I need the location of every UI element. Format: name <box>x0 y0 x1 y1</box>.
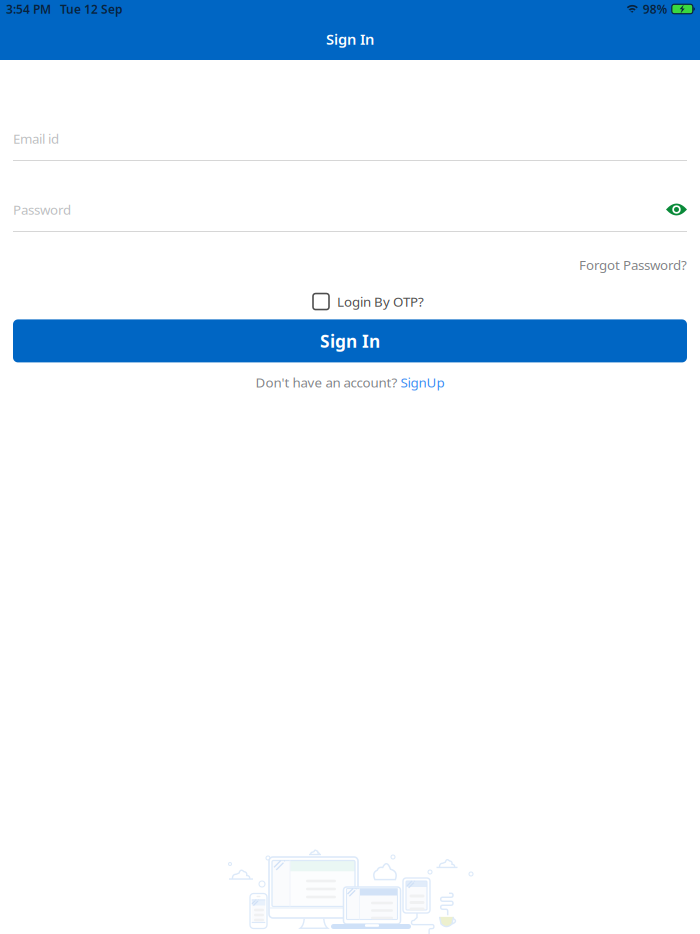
staticText: Sign In <box>326 29 374 49</box>
button[interactable]: Sign In <box>13 319 687 362</box>
button[interactable]: Forgot Password? <box>579 249 687 281</box>
staticText: SignUp <box>400 373 444 391</box>
staticText: Forgot Password? <box>579 256 687 274</box>
staticText: Sign In <box>320 329 380 352</box>
staticText: Password <box>13 201 71 218</box>
staticText: 3:54 PM <box>6 1 51 17</box>
button[interactable]: Show password <box>666 203 687 216</box>
staticText: Don't have an account? <box>255 373 400 391</box>
button[interactable]: SignUp <box>400 373 444 391</box>
button[interactable]: Login By OTP? <box>313 290 424 313</box>
staticText: 98% <box>643 1 668 17</box>
staticText: Tue 12 Sep <box>60 1 123 17</box>
staticText: Login By OTP? <box>337 293 424 310</box>
staticText: Email id <box>13 130 59 147</box>
